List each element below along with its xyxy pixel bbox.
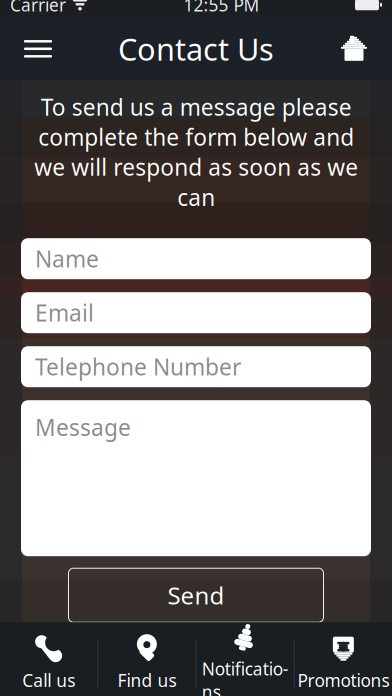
staticText: Carrier: [10, 0, 66, 16]
staticText: Call us: [22, 669, 75, 692]
staticText: Telephone Number: [35, 352, 241, 382]
button[interactable]: Message: [21, 400, 371, 556]
button[interactable]: Name: [21, 238, 371, 279]
button[interactable]: Call us: [0, 622, 97, 696]
button[interactable]: Send: [68, 568, 323, 622]
staticText: Contact Us: [118, 28, 274, 69]
button[interactable]: Menu: [14, 25, 62, 73]
button[interactable]: Notifications: [196, 622, 294, 696]
staticText: Email: [35, 298, 94, 328]
staticText: Notifications: [202, 657, 289, 696]
staticText: Message: [35, 412, 131, 442]
staticText: Name: [35, 244, 99, 274]
staticText: Find us: [117, 669, 176, 692]
button[interactable]: Home: [330, 25, 378, 73]
staticText: Promotions: [297, 669, 389, 692]
button[interactable]: Telephone Number: [21, 346, 371, 387]
staticText: 12:55 PM: [183, 0, 259, 16]
button[interactable]: Promotions: [295, 622, 392, 696]
staticText: Send: [167, 579, 224, 611]
staticText: To send us a message please complete the…: [34, 92, 358, 212]
button[interactable]: Find us: [98, 622, 195, 696]
button[interactable]: Email: [21, 292, 371, 333]
